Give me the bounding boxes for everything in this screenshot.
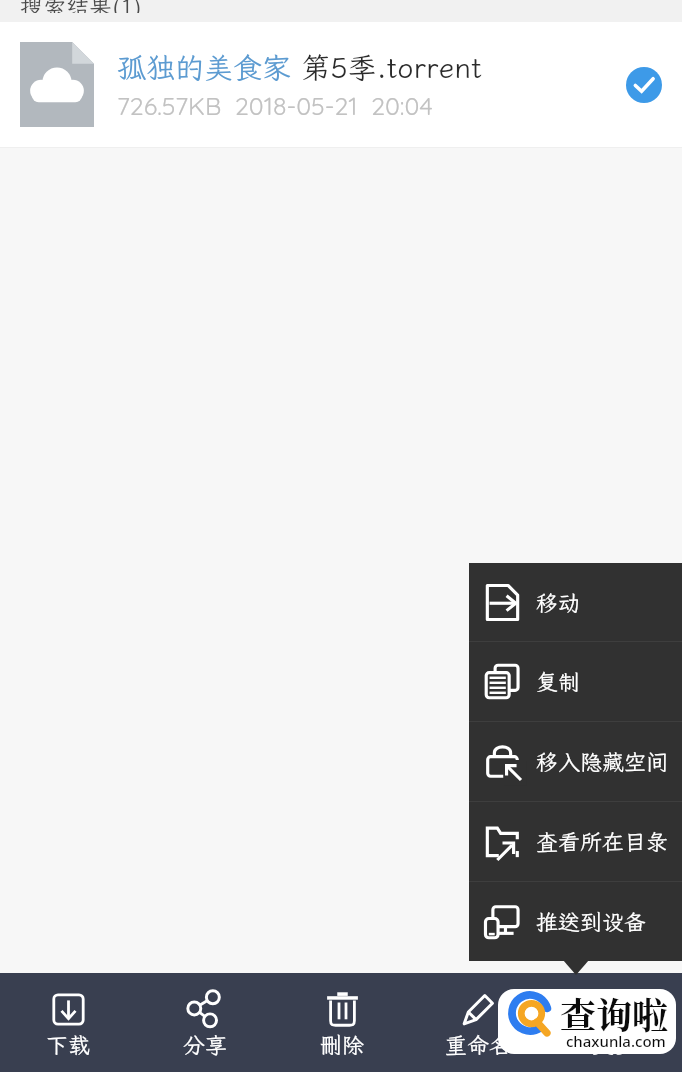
staticText: 移入隐藏空间 <box>536 747 669 776</box>
staticText: 复制 <box>536 667 581 696</box>
button[interactable]: Selected <box>626 67 662 103</box>
button[interactable]: 重命名 <box>410 973 546 1072</box>
staticText: 下载 <box>46 1030 91 1059</box>
staticText: 查看所在目录 <box>536 827 669 856</box>
staticText: chaxunla.com <box>566 1031 666 1051</box>
button[interactable]: 下载 <box>0 973 137 1072</box>
button[interactable]: 查看所在目录 <box>469 802 682 881</box>
staticText: 重命名 <box>445 1030 512 1059</box>
button[interactable]: 分享 <box>137 973 274 1072</box>
staticText: 搜索结果(1) <box>20 0 142 13</box>
staticText: 更多 <box>592 1030 637 1059</box>
button[interactable]: 移动 <box>469 563 682 641</box>
staticText: 分享 <box>183 1030 228 1059</box>
staticText: 查询啦 <box>560 989 669 1040</box>
button[interactable]: 删除 <box>274 973 410 1072</box>
staticText: 删除 <box>320 1030 365 1059</box>
button[interactable]: 复制 <box>469 642 682 721</box>
button[interactable]: 推送到设备 <box>469 882 682 961</box>
button[interactable]: 更多 <box>546 973 682 1072</box>
staticText: 726.57KB 2018-05-21 20:04 <box>117 90 433 121</box>
button[interactable]: 孤独的美食家 第5季.torrent <box>0 22 682 147</box>
staticText: 孤独的美食家 第5季.torrent <box>117 48 482 86</box>
button[interactable]: 移入隐藏空间 <box>469 722 682 801</box>
staticText: 移动 <box>536 588 581 617</box>
staticText: 推送到设备 <box>536 907 647 936</box>
